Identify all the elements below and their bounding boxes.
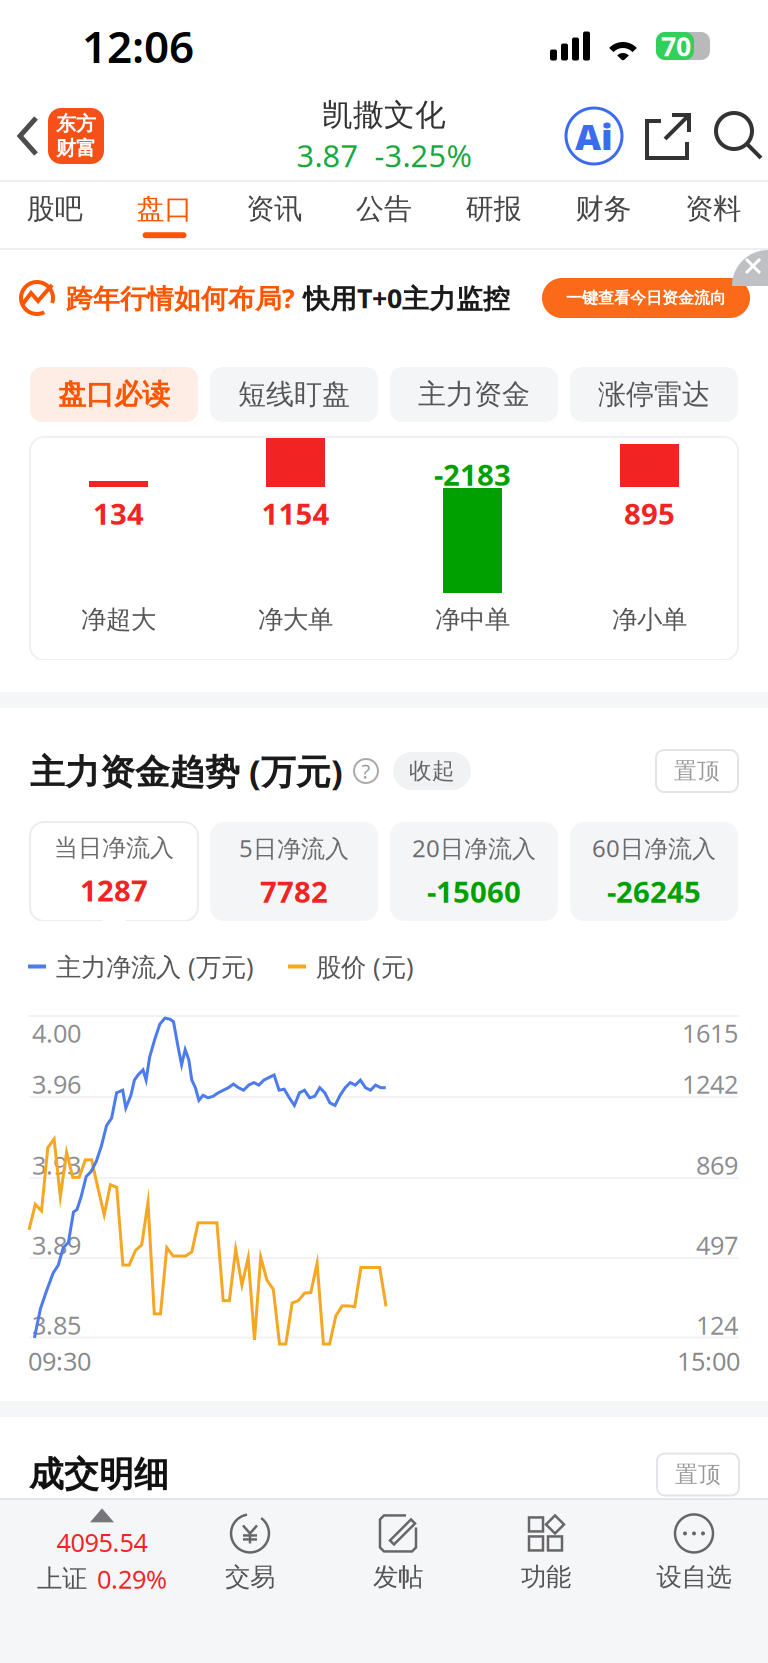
staticText: 60日净流入: [592, 832, 716, 864]
button[interactable]: 盘口必读: [30, 367, 198, 422]
staticText: 短线盯盘: [238, 377, 350, 412]
staticText: 7782: [260, 872, 328, 911]
staticText: 盘口必读: [58, 377, 170, 412]
staticText: 0.29%: [97, 1562, 167, 1596]
staticText: 凯撒文化: [322, 96, 446, 134]
staticText: 主力净流入 (万元): [56, 950, 254, 983]
staticText: 869: [696, 1148, 738, 1182]
staticText: 净大单: [258, 604, 333, 635]
staticText: 3.96: [32, 1067, 81, 1101]
staticText: 资料: [685, 192, 741, 226]
staticText: -2183: [434, 455, 511, 494]
staticText: 134: [93, 494, 144, 533]
staticText: Ai: [575, 112, 613, 160]
staticText: -26245: [607, 872, 701, 911]
staticText: 资讯: [246, 192, 302, 226]
staticText: ?: [361, 758, 370, 784]
staticText: 12:06: [82, 17, 194, 75]
staticText: 跨年行情如何布局?: [66, 280, 295, 316]
button[interactable]: 20日净流入: [390, 822, 558, 921]
staticText: 盘口: [137, 192, 193, 226]
button[interactable]: 置顶: [657, 1419, 768, 1495]
staticText: 09:30: [28, 1344, 91, 1378]
staticText: 财富: [56, 136, 96, 161]
staticText: 一键查看今日资金流向: [566, 288, 726, 308]
staticText: 净小单: [612, 604, 687, 635]
button[interactable]: 发帖: [324, 1500, 472, 1604]
staticText: 交易: [225, 1561, 275, 1592]
button[interactable]: 一键查看今日资金流向: [542, 278, 750, 318]
button[interactable]: 短线盯盘: [210, 367, 378, 422]
staticText: 净超大: [81, 604, 156, 635]
staticText: 895: [624, 494, 675, 533]
button[interactable]: 财务: [549, 182, 658, 248]
staticText: 497: [696, 1228, 738, 1262]
button[interactable]: 资料: [658, 182, 768, 248]
staticText: 收起: [409, 757, 455, 785]
button[interactable]: 收起: [379, 752, 471, 790]
staticText: 3.93: [32, 1148, 81, 1182]
button[interactable]: 资讯: [219, 182, 329, 248]
staticText: 设自选: [656, 1561, 731, 1592]
staticText: 财务: [575, 192, 631, 226]
staticText: 1287: [80, 871, 148, 910]
staticText: 涨停雷达: [598, 377, 710, 412]
staticText: 置顶: [675, 1461, 721, 1488]
staticText: 3.85: [32, 1308, 81, 1342]
staticText: 3.87 -3.25%: [296, 135, 471, 176]
button[interactable]: 盘口: [110, 182, 219, 248]
button[interactable]: 上证 index 4095.54: [0, 1500, 176, 1604]
staticText: 主力资金: [418, 377, 530, 412]
button[interactable]: Help: [343, 758, 379, 784]
staticText: 20日净流入: [412, 832, 536, 864]
button[interactable]: 设自选: [620, 1500, 768, 1604]
button[interactable]: 研报: [439, 182, 549, 248]
staticText: 5日净流入: [239, 832, 349, 864]
staticText: 4.00: [32, 1016, 81, 1050]
staticText: 置顶: [674, 757, 720, 785]
staticText: 上证: [37, 1563, 87, 1594]
staticText: 当日净流入: [54, 833, 174, 863]
staticText: 净中单: [435, 604, 510, 635]
button[interactable]: 当日净流入: [30, 822, 198, 921]
staticText: 1242: [682, 1067, 738, 1101]
staticText: 发帖: [373, 1561, 423, 1592]
staticText: 东方: [56, 111, 96, 136]
staticText: 15:00: [677, 1344, 740, 1378]
staticText: -15060: [427, 872, 521, 911]
staticText: 124: [696, 1308, 738, 1342]
staticText: 功能: [521, 1561, 571, 1592]
staticText: 成交明细: [29, 1453, 169, 1496]
staticText: 股吧: [27, 192, 83, 226]
button[interactable]: 涨停雷达: [570, 367, 738, 422]
staticText: 主力资金趋势 (万元): [30, 748, 343, 794]
staticText: 70: [661, 28, 691, 64]
button[interactable]: 置顶: [656, 750, 768, 792]
button[interactable]: 5日净流入: [210, 822, 378, 921]
staticText: 快用T+0主力监控: [303, 280, 510, 316]
button[interactable]: Share: [625, 110, 713, 162]
staticText: 4095.54: [56, 1525, 147, 1559]
staticText: 3.89: [32, 1228, 81, 1262]
button[interactable]: 公告: [329, 182, 439, 248]
button[interactable]: Search: [713, 110, 768, 162]
button[interactable]: East Money home: [48, 108, 104, 164]
button[interactable]: 功能: [472, 1500, 620, 1604]
button[interactable]: 交易: [176, 1500, 324, 1604]
button[interactable]: Close: [732, 250, 768, 286]
staticText: 1154: [261, 494, 329, 533]
staticText: 研报: [466, 192, 522, 226]
button[interactable]: 60日净流入: [570, 822, 738, 921]
staticText: 公告: [356, 192, 412, 226]
button[interactable]: Back: [0, 92, 48, 180]
button[interactable]: AI assistant: [563, 105, 625, 167]
staticText: 股价 (元): [316, 950, 414, 983]
button[interactable]: 股吧: [0, 182, 110, 248]
staticText: 1615: [682, 1016, 738, 1050]
button[interactable]: 主力资金: [390, 367, 558, 422]
